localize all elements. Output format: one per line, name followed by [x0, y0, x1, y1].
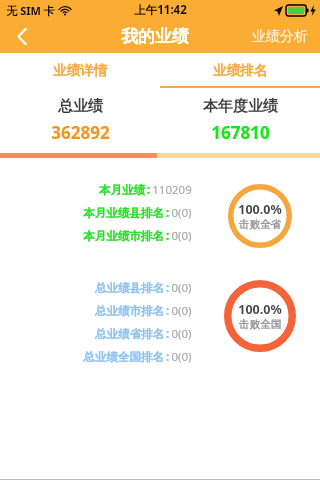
- staticText: :: [164, 303, 171, 319]
- staticText: :: [164, 349, 171, 365]
- staticText: :: [164, 326, 171, 342]
- staticText: 362892: [51, 121, 110, 144]
- staticText: 0(0): [171, 303, 192, 319]
- staticText: 业绩排名: [213, 62, 267, 79]
- button[interactable]: 业绩分析: [250, 24, 310, 50]
- button[interactable]: 100.0%: [224, 280, 296, 352]
- staticText: 业绩详情: [53, 62, 107, 79]
- button[interactable]: 业绩详情: [0, 53, 160, 88]
- staticText: 总业绩县排名: [95, 281, 164, 295]
- staticText: 110209: [152, 182, 192, 198]
- staticText: :: [164, 228, 171, 244]
- button[interactable]: 100.0%: [228, 184, 292, 248]
- staticText: :: [164, 205, 171, 221]
- staticText: 本月业绩: [99, 183, 145, 197]
- staticText: 击败全国: [239, 318, 281, 331]
- staticText: :: [145, 182, 152, 198]
- staticText: 总业绩省排名: [95, 327, 164, 341]
- button[interactable]: 业绩排名: [160, 53, 320, 88]
- staticText: 0(0): [171, 205, 192, 221]
- staticText: 总业绩全国排名: [83, 350, 164, 364]
- staticText: 本月业绩县排名: [83, 206, 164, 220]
- staticText: 0(0): [171, 326, 192, 342]
- button[interactable]: 返回: [0, 20, 44, 53]
- staticText: 0(0): [171, 228, 192, 244]
- staticText: 本月业绩市排名: [83, 229, 164, 243]
- staticText: 总业绩: [58, 97, 103, 116]
- staticText: 167810: [211, 121, 270, 144]
- staticText: :: [164, 280, 171, 296]
- staticText: 击败全省: [239, 218, 281, 231]
- staticText: 总业绩市排名: [95, 304, 164, 318]
- button[interactable]: 总业绩: [0, 88, 160, 153]
- staticText: 0(0): [171, 280, 192, 296]
- staticText: 我的业绩: [121, 26, 189, 47]
- staticText: 上午11:42: [134, 2, 187, 18]
- staticText: 0(0): [171, 349, 192, 365]
- staticText: 业绩分析: [252, 28, 308, 46]
- staticText: 100.0%: [238, 301, 282, 318]
- button[interactable]: 本年度业绩: [160, 88, 320, 153]
- staticText: 本年度业绩: [203, 97, 278, 116]
- staticText: 无 SIM 卡: [6, 3, 55, 18]
- staticText: 100.0%: [238, 201, 282, 218]
